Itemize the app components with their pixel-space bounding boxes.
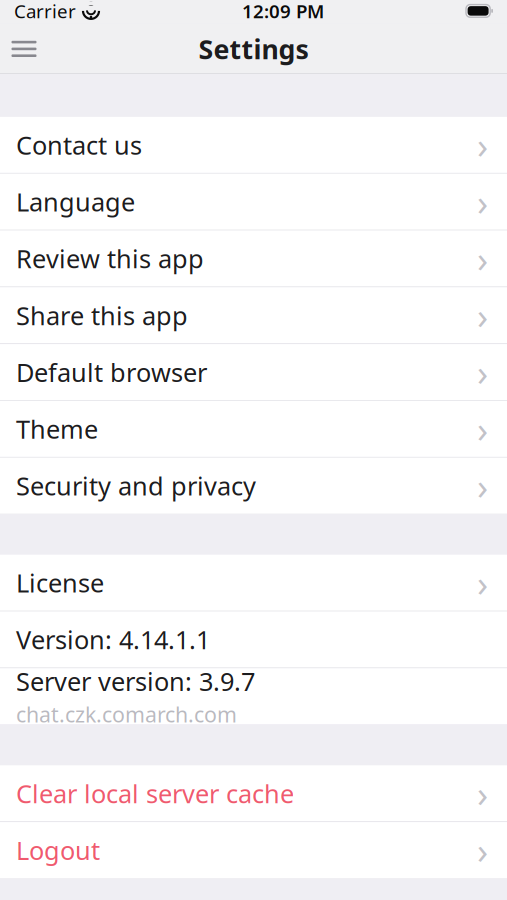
staticText: ›	[477, 235, 488, 282]
button[interactable]: Version: 4.14.1.1	[0, 611, 507, 667]
staticText: ›	[477, 769, 488, 817]
staticText: Review this app	[16, 242, 204, 275]
button[interactable]: Server version: 3.9.7	[0, 668, 507, 724]
button[interactable]: Language	[0, 174, 507, 230]
staticText: chat.czk.comarch.com	[16, 700, 237, 728]
staticText: Theme	[16, 412, 98, 446]
staticText: ›	[477, 462, 488, 510]
staticText: Server version: 3.9.7	[16, 664, 255, 698]
button[interactable]: Clear local server cache	[0, 765, 507, 821]
staticText: Default browser	[16, 355, 207, 389]
button[interactable]: Review this app	[0, 230, 507, 286]
staticText: ›	[477, 348, 488, 396]
staticText: Carrier	[14, 0, 76, 23]
staticText: ›	[477, 559, 488, 607]
button[interactable]: Security and privacy	[0, 458, 507, 514]
staticText: ›	[477, 121, 488, 169]
staticText: ›	[477, 178, 488, 226]
staticText: License	[16, 566, 104, 599]
staticText: Security and privacy	[16, 469, 256, 502]
staticText: Settings	[198, 31, 308, 67]
staticText: Version: 4.14.1.1	[16, 623, 210, 656]
staticText: Clear local server cache	[16, 776, 294, 810]
button[interactable]: License	[0, 555, 507, 611]
button[interactable]: Menu	[0, 27, 48, 71]
staticText: Language	[16, 185, 135, 218]
staticText: ›	[477, 405, 488, 453]
button[interactable]: Contact us	[0, 117, 507, 173]
staticText: ›	[477, 291, 488, 339]
button[interactable]: Theme	[0, 401, 507, 457]
button[interactable]: Logout	[0, 822, 507, 878]
staticText: Logout	[16, 833, 100, 867]
staticText: 12:09 PM	[242, 0, 324, 23]
staticText: ›	[477, 826, 488, 874]
staticText: Share this app	[16, 298, 188, 332]
staticText: Contact us	[16, 128, 142, 162]
button[interactable]: Share this app	[0, 287, 507, 343]
button[interactable]: Default browser	[0, 344, 507, 400]
